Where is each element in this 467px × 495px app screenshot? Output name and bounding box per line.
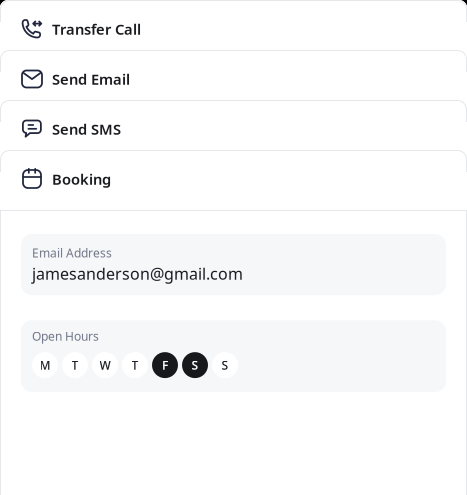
button[interactable]: T <box>122 352 148 378</box>
staticText: Open Hours <box>32 328 99 344</box>
staticText: T <box>131 357 138 373</box>
staticText: jamesanderson@gmail.com <box>32 263 243 284</box>
button[interactable]: Transfer Call <box>0 0 467 50</box>
button[interactable]: M <box>32 352 58 378</box>
button[interactable]: F <box>152 352 178 378</box>
button[interactable]: Send SMS <box>0 100 467 150</box>
button[interactable]: S <box>212 352 238 378</box>
staticText: W <box>99 357 110 373</box>
staticText: M <box>39 357 50 373</box>
staticText: S <box>221 357 228 373</box>
button[interactable]: S <box>182 352 208 378</box>
staticText: S <box>191 357 198 373</box>
staticText: Email Address <box>32 245 112 261</box>
button[interactable]: T <box>62 352 88 378</box>
staticText: Booking <box>52 169 111 189</box>
staticText: T <box>71 357 78 373</box>
button[interactable]: Send Email <box>0 50 467 100</box>
staticText: Send Email <box>52 69 130 89</box>
button[interactable]: W <box>92 352 118 378</box>
staticText: Send SMS <box>52 119 121 139</box>
button[interactable]: Booking <box>0 150 467 200</box>
staticText: Transfer Call <box>52 19 141 39</box>
staticText: F <box>162 357 168 373</box>
